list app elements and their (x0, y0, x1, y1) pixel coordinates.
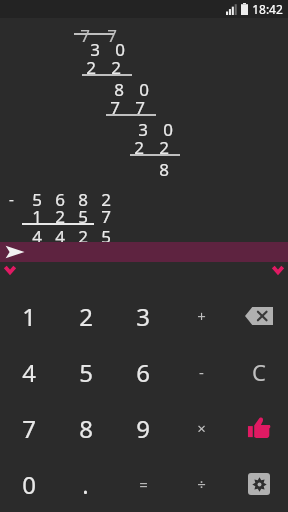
staticText: 7 (22, 412, 36, 445)
button[interactable]: = (114, 456, 172, 512)
staticText: 0 (137, 78, 151, 101)
button[interactable]: 7 (0, 400, 57, 456)
staticText: 5 (79, 356, 93, 389)
button[interactable]: 8 (57, 400, 114, 456)
button[interactable]: 6 (114, 344, 172, 400)
staticText: 1 (22, 300, 36, 333)
staticText: 0 (113, 38, 127, 61)
button[interactable]: 9 (114, 400, 172, 456)
staticText: 0 (161, 118, 175, 141)
other: Scroll down (271, 265, 285, 274)
staticText: 1 (30, 205, 44, 228)
staticText: 3 (136, 300, 150, 333)
button[interactable]: Settings (230, 456, 288, 512)
staticText: 8 (157, 158, 171, 181)
other: Expand (3, 245, 25, 259)
staticText: 7 (133, 96, 147, 119)
staticText: × (197, 418, 206, 438)
staticText: 7 (99, 205, 113, 228)
button[interactable]: 1 (0, 288, 57, 344)
button[interactable]: . (57, 456, 114, 512)
staticText: 3 (88, 38, 102, 61)
button[interactable]: 4 (0, 344, 57, 400)
staticText: 4 (53, 225, 67, 248)
staticText: 7 (108, 96, 122, 119)
staticText: 5 (30, 188, 44, 211)
staticText: ÷ (197, 474, 206, 494)
staticText: 4 (30, 225, 44, 248)
staticText: 2 (76, 225, 90, 248)
button[interactable]: + (172, 288, 230, 344)
staticText: 2 (79, 300, 93, 333)
staticText: 6 (53, 188, 67, 211)
staticText: - (199, 362, 204, 382)
staticText: . (82, 468, 89, 501)
staticText: 2 (99, 188, 113, 211)
other: Scroll down (3, 265, 17, 274)
staticText: C (252, 357, 266, 387)
staticText: 5 (76, 205, 90, 228)
staticText: + (197, 306, 206, 326)
button[interactable]: Like (230, 400, 288, 456)
button[interactable]: 3 (114, 288, 172, 344)
staticText: 7 (78, 24, 92, 47)
button[interactable]: 0 (0, 456, 57, 512)
staticText: 2 (132, 136, 146, 159)
button[interactable]: 5 (57, 344, 114, 400)
staticText: 7 (105, 24, 119, 47)
staticText: 8 (112, 78, 126, 101)
button[interactable]: 2 (57, 288, 114, 344)
staticText: 2 (109, 56, 123, 79)
staticText: 8 (76, 188, 90, 211)
button[interactable]: Expand (0, 242, 288, 262)
button[interactable]: - (172, 344, 230, 400)
staticText: 2 (157, 136, 171, 159)
button[interactable]: × (172, 400, 230, 456)
staticText: 18:42 (252, 1, 283, 17)
staticText: 3 (136, 118, 150, 141)
staticText: 0 (22, 468, 36, 501)
staticText: 5 (99, 225, 113, 248)
staticText: 9 (136, 412, 150, 445)
staticText: 8 (79, 412, 93, 445)
staticText: 2 (84, 56, 98, 79)
staticText: = (139, 474, 148, 494)
staticText: 2 (53, 205, 67, 228)
staticText: 6 (136, 356, 150, 389)
staticText: 4 (22, 356, 36, 389)
button[interactable]: C (230, 344, 288, 400)
button[interactable]: Backspace (230, 288, 288, 344)
button[interactable]: ÷ (172, 456, 230, 512)
staticText: - (9, 189, 14, 209)
